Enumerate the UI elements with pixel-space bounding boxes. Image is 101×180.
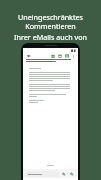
button[interactable]: Back xyxy=(26,53,31,58)
button[interactable]: Archive xyxy=(50,53,55,58)
staticText: Uneingeschränktes Kommentieren xyxy=(6,12,95,31)
button[interactable]: Mark unread xyxy=(64,53,69,58)
button[interactable]: Forward xyxy=(69,171,75,177)
staticText: Ihrer eMails auch von unterwegs. xyxy=(6,32,95,51)
button[interactable]: More options xyxy=(71,54,75,58)
button[interactable]: Delete xyxy=(57,53,62,58)
button[interactable] xyxy=(26,171,59,177)
button[interactable] xyxy=(26,65,75,169)
button[interactable]: Reply xyxy=(61,171,67,177)
